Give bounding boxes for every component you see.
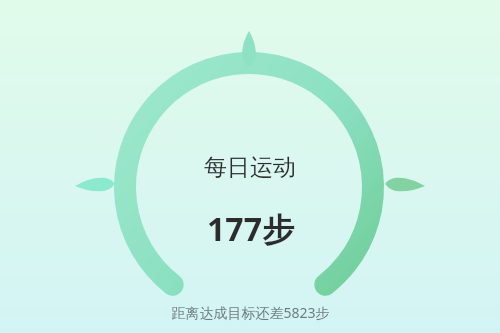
staticText: 每日运动 (204, 153, 296, 182)
button[interactable]: Daily step goal progress (171, 303, 330, 322)
staticText: 177步 (207, 207, 294, 251)
staticText: 距离达成目标还差5823步 (171, 303, 330, 322)
